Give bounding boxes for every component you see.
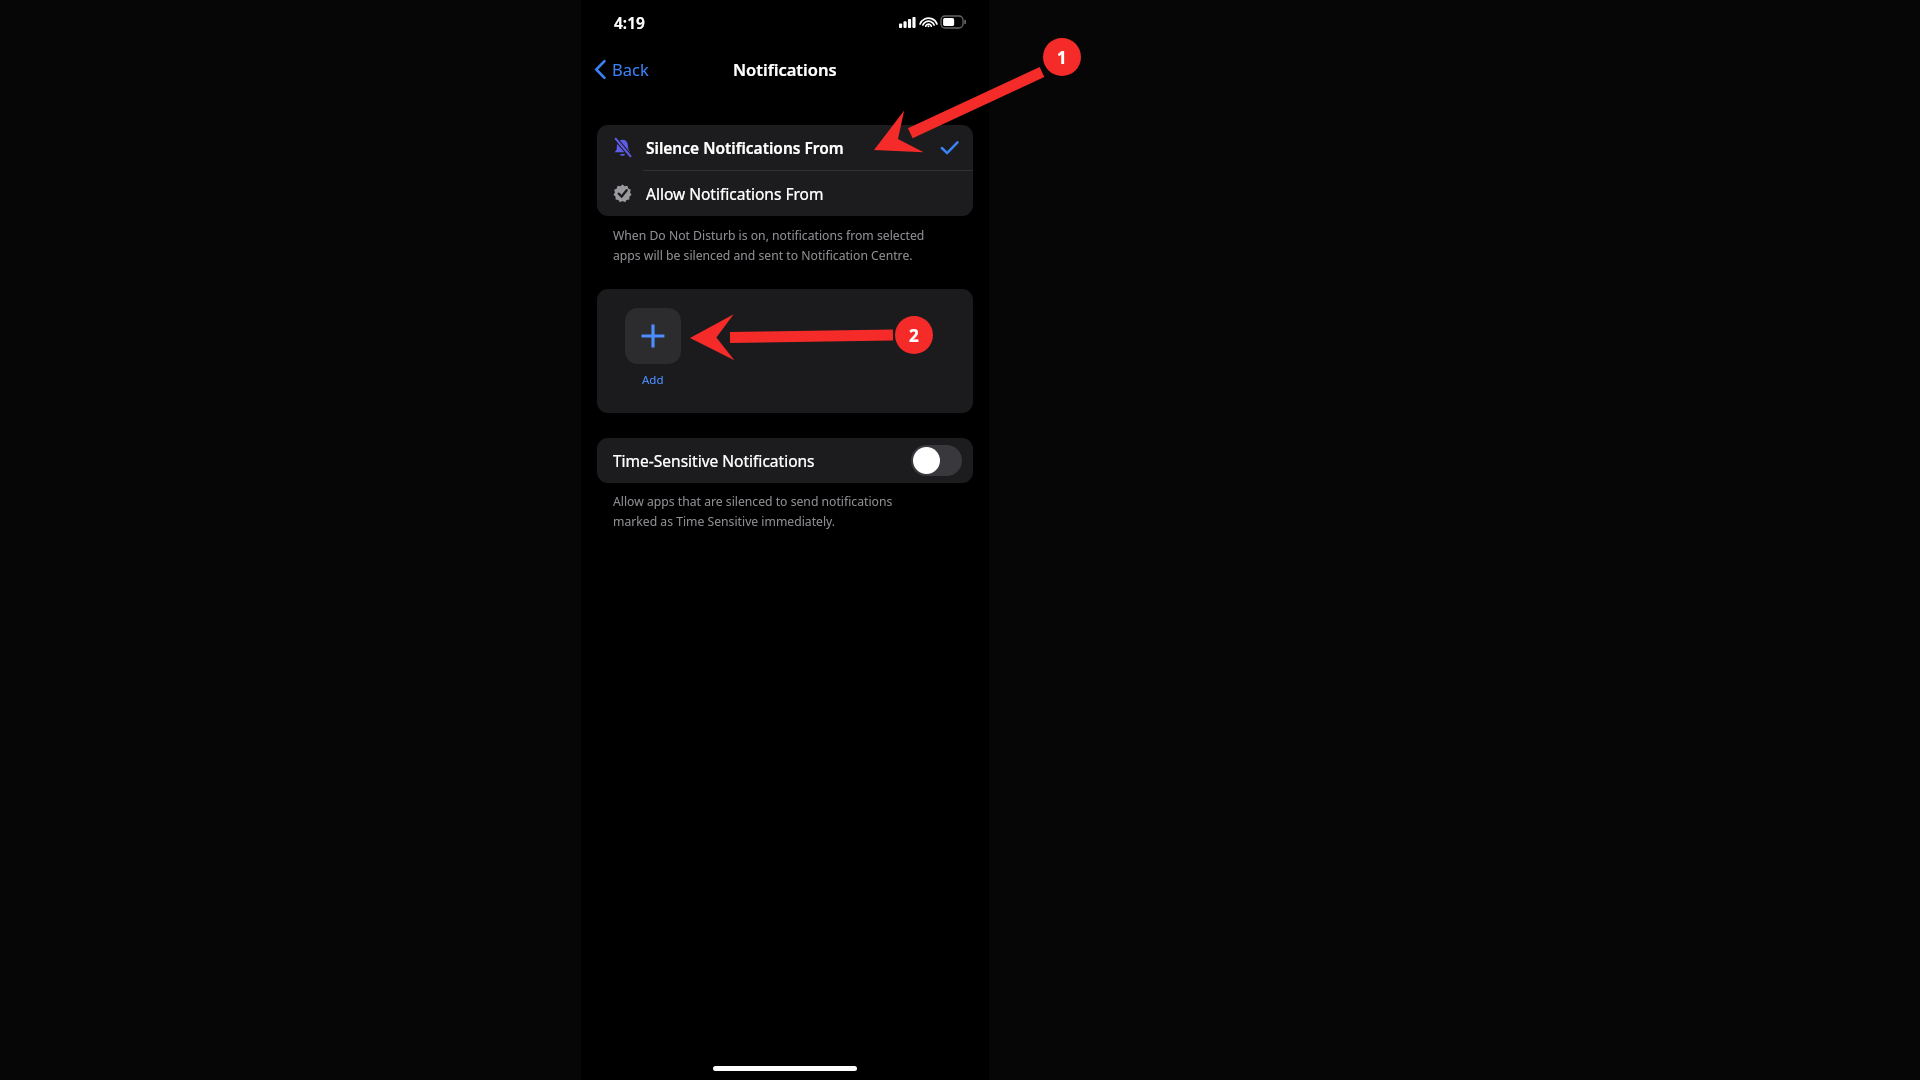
staticText: Back [612, 58, 649, 80]
button[interactable]: Back [590, 52, 654, 86]
button[interactable]: Add app [623, 308, 683, 388]
button[interactable]: Time-Sensitive Notifications [597, 438, 973, 483]
button[interactable]: Silence Notifications From [597, 125, 973, 170]
staticText: 1 [1057, 46, 1067, 69]
staticText: 2 [909, 324, 919, 347]
button[interactable]: Time-Sensitive Notifications toggle [911, 445, 962, 476]
staticText: Add [642, 372, 664, 388]
staticText: Allow apps that are silenced to send not… [613, 493, 893, 510]
staticText: Silence Notifications From [646, 137, 844, 158]
staticText: marked as Time Sensitive immediately. [613, 513, 836, 530]
button[interactable]: Allow Notifications From [597, 171, 973, 216]
staticText: Allow Notifications From [646, 183, 824, 204]
staticText: When Do Not Disturb is on, notifications… [613, 227, 925, 244]
staticText: Notifications [733, 58, 837, 80]
staticText: 4:19 [614, 12, 645, 33]
staticText: Time-Sensitive Notifications [613, 450, 815, 471]
staticText: apps will be silenced and sent to Notifi… [613, 247, 913, 264]
